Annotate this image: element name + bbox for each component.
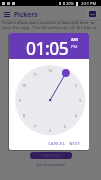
staticText: NEXT: [69, 141, 81, 147]
button[interactable]: Pickers: [0, 6, 101, 20]
staticText: 9: [19, 98, 22, 102]
staticText: 10: [22, 83, 27, 87]
staticText: Pickers: [14, 10, 38, 19]
button[interactable]: TIMEPICKER: [30, 152, 72, 159]
button[interactable]: CANCEL: [48, 140, 65, 148]
staticText: 8: [23, 113, 26, 117]
staticText: 6: [49, 128, 52, 132]
staticText: 20%: [66, 1, 74, 6]
button[interactable]: See documentation: [36, 161, 65, 167]
button[interactable]: [4, 12, 10, 17]
button[interactable]: NEXT: [68, 140, 81, 148]
staticText: CANCEL: [48, 141, 65, 147]
staticText: 3: [79, 98, 82, 102]
button[interactable]: PM: [71, 44, 78, 50]
staticText: See documentation: [36, 162, 65, 166]
staticText: Pickers allow users to select a date and…: [2, 20, 95, 26]
staticText: 4: [75, 113, 78, 117]
staticText: into the app. The DroidScript UI Kit has…: [2, 25, 97, 31]
staticText: 01:05: [26, 36, 69, 60]
staticText: 11: [33, 72, 38, 76]
staticText: 2: [75, 83, 78, 87]
staticText: 5: [64, 124, 67, 128]
staticText: 2:51 PM: [81, 1, 97, 6]
button[interactable]: [86, 8, 98, 20]
staticText: TIMEPICKER: [41, 154, 61, 158]
button[interactable]: AM: [71, 37, 78, 43]
staticText: 7: [34, 124, 37, 128]
staticText: 12: [48, 68, 53, 72]
